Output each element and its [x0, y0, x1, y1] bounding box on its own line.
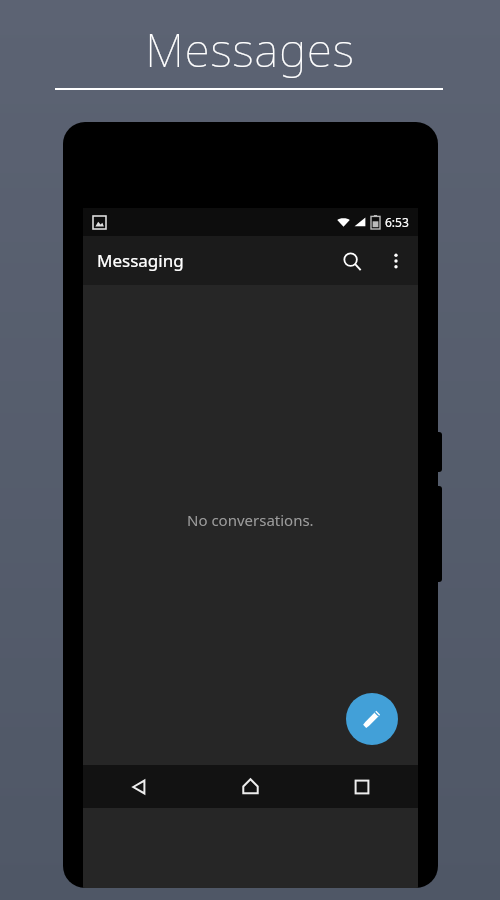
staticText: No conversations. [187, 510, 314, 530]
staticText: Messages [145, 18, 355, 81]
button[interactable]: Home [194, 765, 306, 808]
button[interactable]: Back [83, 765, 194, 808]
button[interactable]: Recent apps [306, 765, 418, 808]
staticText: 6:53 [385, 214, 409, 230]
button[interactable]: More options [374, 239, 418, 283]
button[interactable]: Search [330, 239, 374, 283]
button[interactable]: Compose new message [346, 693, 398, 745]
staticText: Messaging [97, 249, 184, 272]
